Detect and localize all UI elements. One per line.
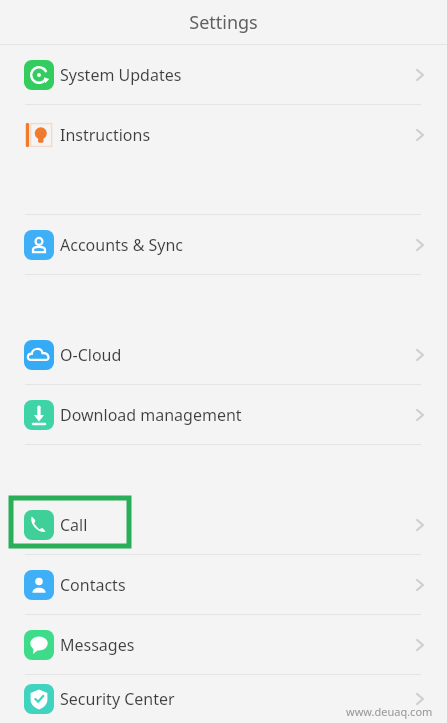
button[interactable]: Download management [0, 385, 447, 444]
button[interactable]: Instructions [0, 105, 447, 164]
staticText: System Updates [60, 64, 182, 86]
button[interactable]: Call [0, 495, 447, 554]
staticText: Download management [60, 404, 242, 426]
button[interactable]: Contacts [0, 555, 447, 614]
button[interactable]: Accounts & Sync [0, 215, 447, 274]
button[interactable]: O-Cloud [0, 325, 447, 384]
staticText: Contacts [60, 574, 126, 596]
staticText: Messages [60, 634, 135, 656]
staticText: Settings [189, 10, 258, 35]
staticText: www.deuaq.com [346, 704, 433, 719]
button[interactable]: Messages [0, 615, 447, 674]
staticText: Security Center [60, 688, 175, 710]
staticText: Accounts & Sync [60, 234, 184, 256]
button[interactable]: System Updates [0, 45, 447, 104]
button[interactable]: Security Center [0, 675, 447, 723]
staticText: Instructions [60, 124, 151, 146]
staticText: O-Cloud [60, 344, 122, 366]
staticText: Call [60, 514, 88, 536]
